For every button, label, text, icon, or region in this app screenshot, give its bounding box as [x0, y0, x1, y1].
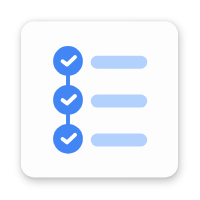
button[interactable]: Checklist — [0, 0, 200, 200]
